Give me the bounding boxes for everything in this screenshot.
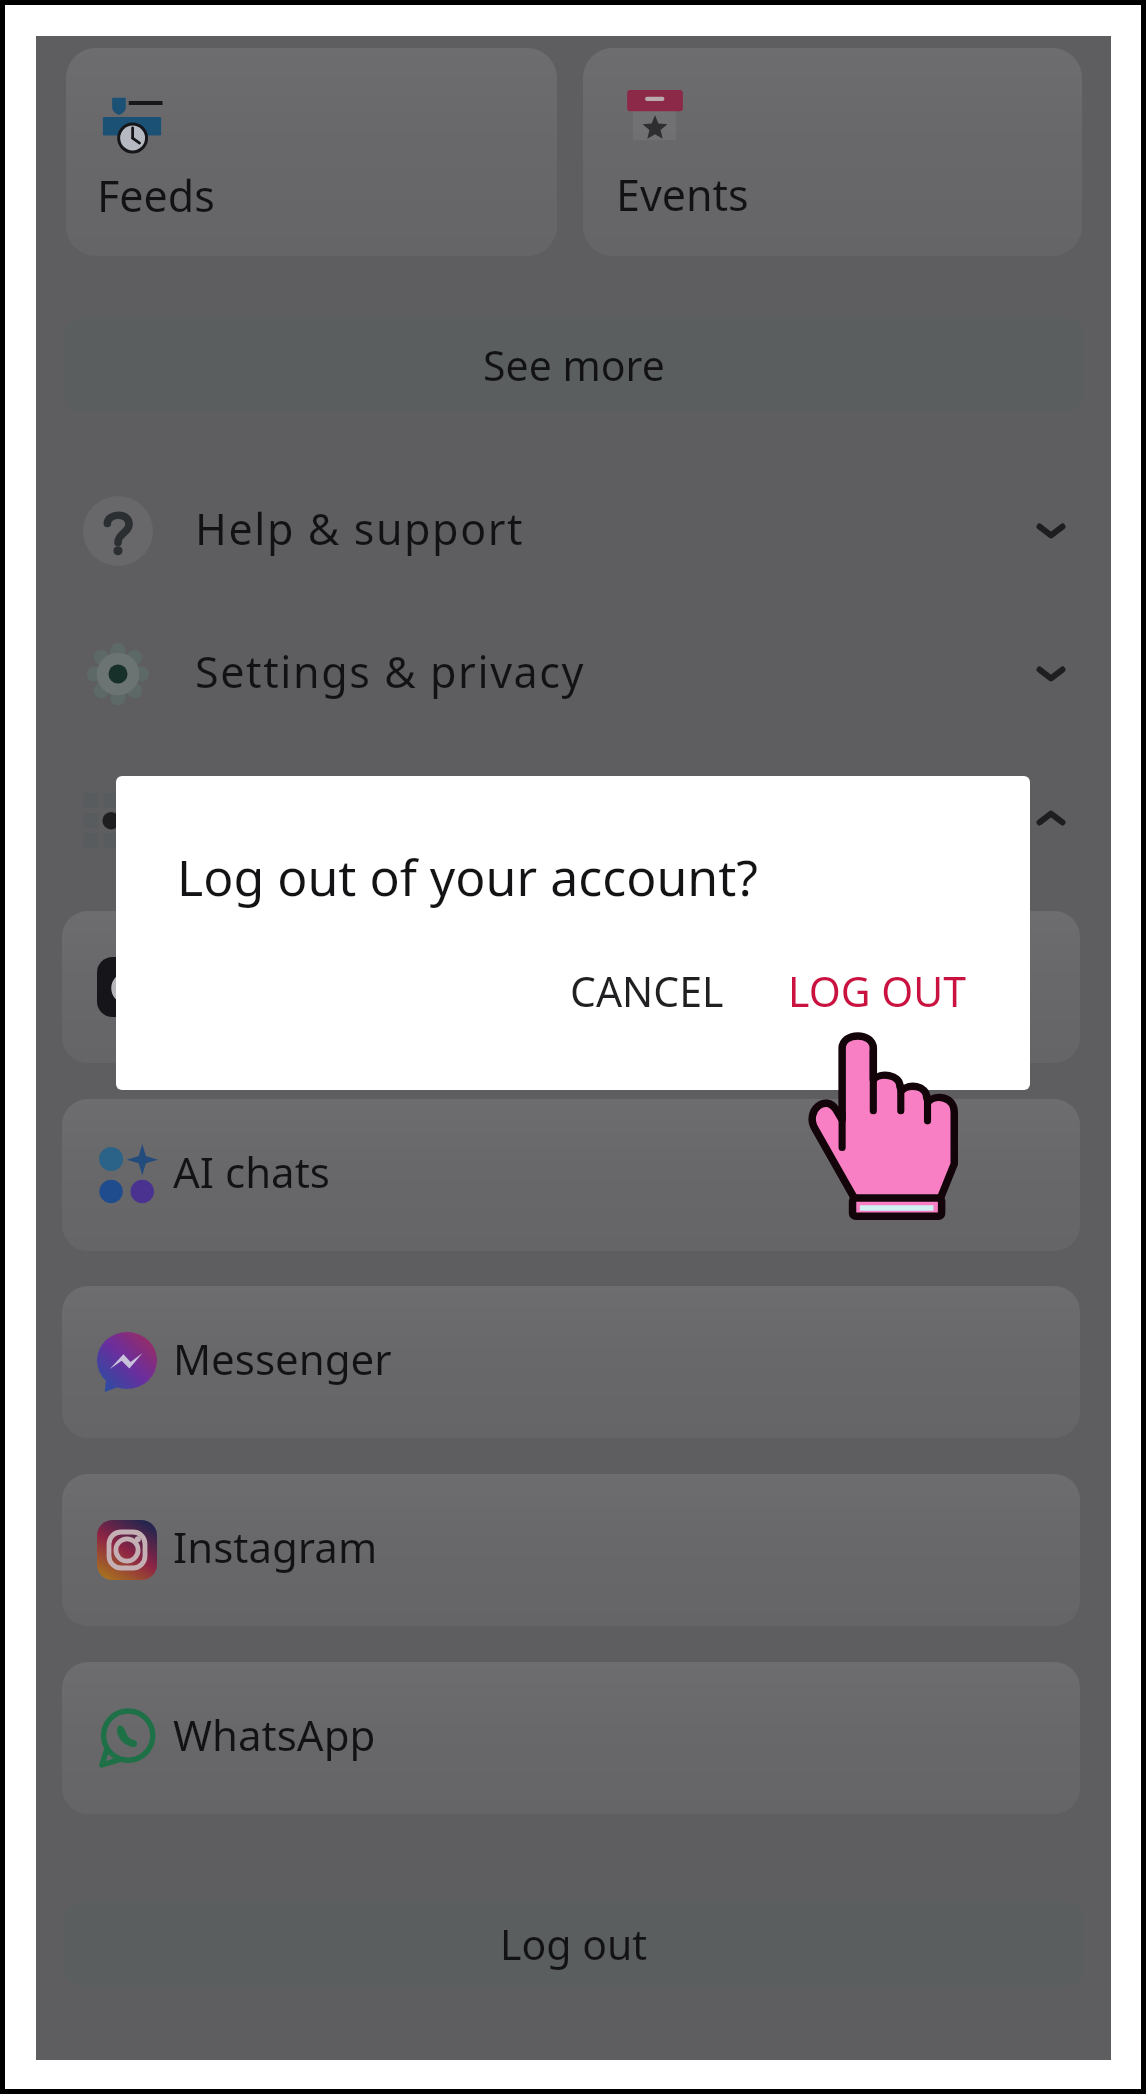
button[interactable]: CANCEL — [550, 943, 744, 1039]
button[interactable]: LOG OUT — [768, 943, 986, 1039]
button[interactable]: Threads — [62, 911, 1080, 1063]
staticText: Events — [616, 165, 749, 224]
staticText: AI chats — [173, 1143, 330, 1200]
staticText: Log out — [500, 1916, 648, 1972]
button[interactable]: Help & support — [36, 459, 1111, 602]
staticText: See more — [483, 337, 665, 393]
staticText: Instagram — [173, 1518, 378, 1575]
button[interactable]: Log out — [63, 1902, 1084, 1986]
staticText: Messenger — [173, 1330, 392, 1387]
button[interactable]: Events — [583, 48, 1082, 256]
staticText: LOG OUT — [788, 963, 966, 1019]
staticText: Log out of your account? — [177, 843, 758, 911]
staticText: CANCEL — [570, 963, 724, 1019]
staticText: Help & support — [195, 499, 525, 558]
staticText: WhatsApp — [173, 1706, 376, 1763]
button[interactable]: Settings & privacy — [36, 602, 1111, 745]
button[interactable]: WhatsApp — [62, 1662, 1080, 1814]
other: Tap cursor — [802, 1029, 958, 1220]
button[interactable]: Also from Meta — [36, 746, 1111, 889]
staticText: Feeds — [97, 166, 215, 225]
button[interactable]: Messenger — [62, 1286, 1080, 1438]
button[interactable]: Feeds — [66, 48, 557, 256]
button[interactable]: Instagram — [62, 1474, 1080, 1626]
button[interactable]: See more — [63, 318, 1084, 412]
staticText: Settings & privacy — [195, 642, 586, 701]
button[interactable]: AI chats — [62, 1099, 1080, 1251]
